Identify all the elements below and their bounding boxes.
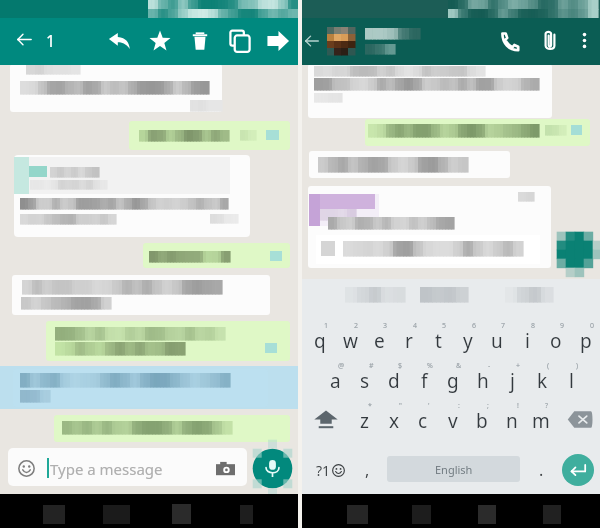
button[interactable] bbox=[54, 415, 290, 442]
staticText: ! bbox=[517, 401, 519, 411]
button[interactable]: Back bbox=[15, 30, 34, 49]
button[interactable]: " bbox=[380, 401, 408, 435]
staticText: + bbox=[516, 361, 521, 371]
button[interactable] bbox=[309, 151, 510, 178]
button[interactable]: ?1 bbox=[316, 459, 356, 481]
button[interactable] bbox=[10, 64, 222, 112]
staticText: * bbox=[368, 401, 372, 411]
button[interactable]: Camera bbox=[216, 460, 235, 476]
button[interactable]: 3 bbox=[365, 321, 393, 355]
staticText: 2 bbox=[354, 321, 359, 331]
button[interactable]: : bbox=[439, 401, 467, 435]
button[interactable]: 5 bbox=[424, 321, 452, 355]
staticText: o bbox=[550, 328, 562, 354]
button[interactable]: Delete bbox=[188, 29, 212, 53]
staticText: Type a message bbox=[50, 459, 163, 479]
button[interactable]: ! bbox=[498, 401, 526, 435]
button[interactable]: ) bbox=[557, 361, 585, 395]
staticText: q bbox=[314, 328, 326, 354]
staticText: 5 bbox=[442, 321, 447, 331]
button[interactable]: Attach bbox=[539, 29, 561, 51]
button[interactable]: 0 bbox=[572, 321, 600, 355]
button[interactable]: ( bbox=[528, 361, 556, 395]
button[interactable]: @ bbox=[321, 361, 349, 395]
staticText: x bbox=[389, 408, 400, 434]
button[interactable]: Send bbox=[553, 228, 599, 274]
button[interactable]: - bbox=[469, 361, 497, 395]
staticText: w bbox=[343, 328, 358, 354]
button[interactable] bbox=[12, 275, 270, 315]
staticText: ( bbox=[547, 361, 550, 371]
button[interactable]: 1 bbox=[306, 321, 334, 355]
button[interactable]: * bbox=[350, 401, 378, 435]
staticText: @ bbox=[338, 361, 345, 371]
button[interactable] bbox=[0, 366, 298, 409]
button[interactable] bbox=[8, 448, 247, 486]
button[interactable]: , bbox=[359, 459, 375, 481]
button[interactable]: ; bbox=[468, 401, 496, 435]
button[interactable]: ' bbox=[409, 401, 437, 435]
button[interactable]: 2 bbox=[336, 321, 364, 355]
button[interactable]: Back bbox=[303, 32, 321, 50]
button[interactable]: 6 bbox=[454, 321, 482, 355]
button[interactable]: Voice message bbox=[250, 446, 295, 491]
button[interactable]: English bbox=[387, 456, 520, 482]
button[interactable]: Star bbox=[148, 29, 172, 53]
staticText: j bbox=[510, 368, 515, 394]
staticText: 8 bbox=[531, 321, 536, 331]
button[interactable]: Reply bbox=[107, 29, 131, 53]
button[interactable]: . bbox=[533, 459, 549, 481]
button[interactable]: + bbox=[498, 361, 526, 395]
button[interactable]: Enter bbox=[562, 454, 594, 486]
staticText: i bbox=[525, 328, 530, 354]
button[interactable]: $ bbox=[380, 361, 408, 395]
staticText: p bbox=[580, 328, 592, 354]
button[interactable]: Call bbox=[498, 30, 520, 52]
staticText: h bbox=[477, 368, 489, 394]
staticText: l bbox=[569, 368, 574, 394]
button[interactable]: 9 bbox=[542, 321, 570, 355]
staticText: r bbox=[405, 328, 413, 354]
button[interactable]: # bbox=[351, 361, 379, 395]
button[interactable] bbox=[129, 121, 290, 150]
staticText: u bbox=[491, 328, 503, 354]
button[interactable]: Shift bbox=[313, 409, 339, 429]
button[interactable] bbox=[308, 186, 551, 268]
button[interactable]: 7 bbox=[483, 321, 511, 355]
staticText: k bbox=[537, 368, 548, 394]
button[interactable]: % bbox=[410, 361, 438, 395]
button[interactable]: Contact photo bbox=[327, 27, 355, 55]
button[interactable]: & bbox=[439, 361, 467, 395]
button[interactable] bbox=[143, 243, 290, 268]
button[interactable] bbox=[46, 321, 290, 361]
button[interactable]: Forward bbox=[266, 29, 290, 53]
button[interactable]: ? bbox=[527, 401, 555, 435]
staticText: a bbox=[330, 368, 341, 394]
staticText: 9 bbox=[560, 321, 565, 331]
button[interactable] bbox=[14, 155, 250, 237]
staticText: ?1 bbox=[316, 461, 331, 480]
staticText: # bbox=[369, 361, 374, 371]
button[interactable]: Backspace bbox=[567, 410, 593, 429]
staticText: ) bbox=[576, 361, 579, 371]
button[interactable] bbox=[308, 64, 552, 118]
staticText: . bbox=[539, 459, 544, 481]
button[interactable]: 4 bbox=[395, 321, 423, 355]
button[interactable]: 8 bbox=[513, 321, 541, 355]
staticText: f bbox=[421, 368, 428, 394]
staticText: 4 bbox=[413, 321, 418, 331]
button[interactable]: Copy bbox=[228, 29, 252, 53]
button[interactable]: More options bbox=[574, 30, 595, 51]
staticText: % bbox=[427, 361, 433, 371]
staticText: English bbox=[435, 462, 473, 477]
button[interactable] bbox=[365, 119, 590, 146]
staticText: z bbox=[360, 408, 369, 434]
